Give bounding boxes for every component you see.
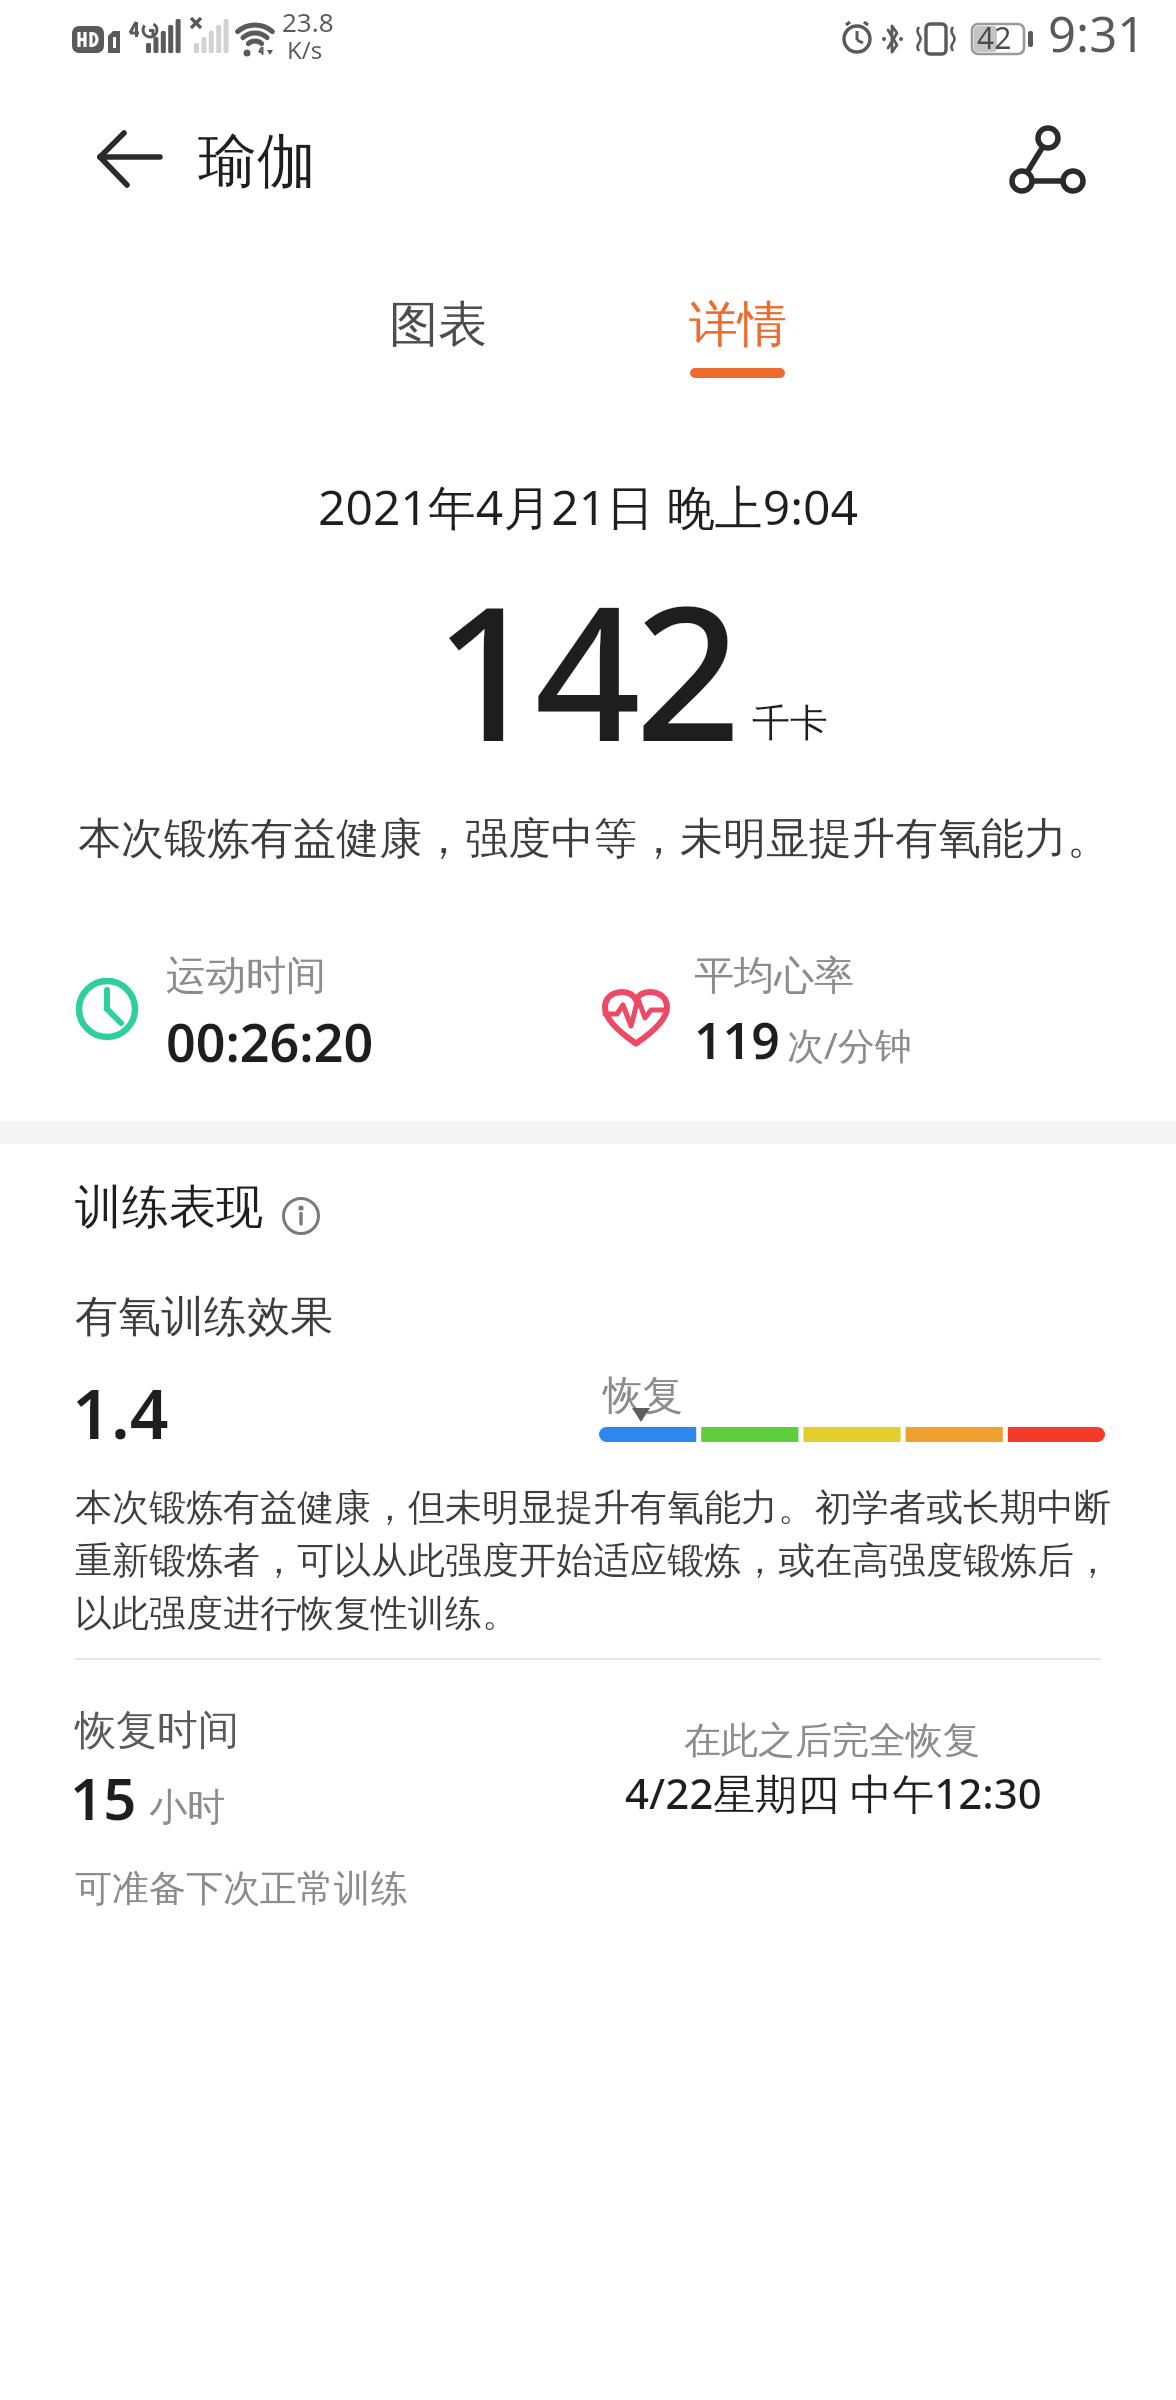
staticText: K/s	[287, 33, 323, 66]
staticText: 2021年4月21日 晚上9:04	[318, 474, 858, 540]
button[interactable]	[80, 110, 180, 210]
button[interactable]: 图表	[340, 270, 535, 380]
staticText: 有氧训练效果	[75, 1290, 333, 1344]
staticText: 图表	[389, 294, 487, 356]
staticText: 恢复时间	[75, 1705, 239, 1757]
staticText: 23.8	[282, 4, 334, 39]
staticText: 小时	[149, 1783, 225, 1831]
button[interactable]	[281, 1196, 321, 1236]
staticText: 4/22星期四 中午12:30	[625, 1764, 1042, 1821]
staticText: 9:31	[1048, 0, 1146, 67]
button[interactable]	[990, 110, 1100, 210]
staticText: 运动时间	[166, 950, 326, 1000]
staticText: 42	[977, 17, 1012, 58]
staticText: 次/分钟	[787, 1019, 912, 1070]
staticText: 142	[434, 542, 736, 795]
staticText: 本次锻炼有益健康，但未明显提升有氧能力。初学者或长期中断 重新锻炼者，可以从此强…	[75, 1484, 1111, 1637]
staticText: 平均心率	[694, 950, 854, 1000]
staticText: 1.4	[72, 1366, 169, 1459]
staticText: 训练表现	[75, 1178, 263, 1237]
button[interactable]: 详情	[640, 270, 835, 380]
staticText: 00:26:20	[166, 1006, 374, 1077]
staticText: 本次锻炼有益健康，强度中等，未明显提升有氧能力。	[78, 812, 1110, 866]
staticText: 千卡	[752, 699, 828, 747]
staticText: 可准备下次正常训练	[75, 1865, 408, 1912]
staticText: 15	[70, 1758, 137, 1837]
staticText: 详情	[689, 294, 787, 356]
staticText: 瑜伽	[198, 124, 316, 198]
staticText: 恢复	[603, 1370, 683, 1420]
staticText: 119	[694, 1006, 780, 1074]
staticText: 在此之后完全恢复	[684, 1717, 980, 1764]
